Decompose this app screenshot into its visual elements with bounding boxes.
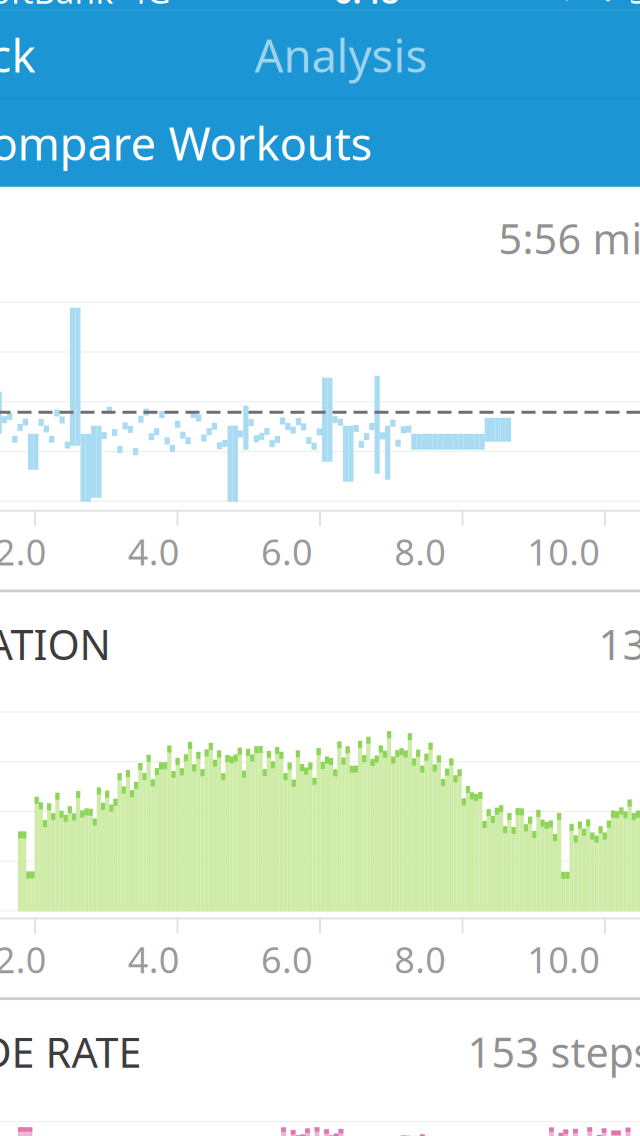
staticText: 2.0 xyxy=(0,935,47,983)
staticText: 4.0 xyxy=(128,528,180,575)
staticText: 6:48 xyxy=(333,0,399,13)
staticText: 6.0 xyxy=(261,528,313,575)
staticText: 153 steps/min xyxy=(467,1024,640,1079)
button[interactable]: ❮ xyxy=(0,15,35,95)
staticText: SoftBank xyxy=(0,0,113,13)
staticText: 58% xyxy=(628,0,640,13)
staticText: 2.0 xyxy=(0,528,47,575)
staticText: 4.0 xyxy=(128,935,180,983)
staticText: STRIDE RATE xyxy=(0,1024,141,1079)
staticText: 10.0 xyxy=(527,935,600,983)
staticText: 8.0 xyxy=(394,528,446,575)
staticText: 8.0 xyxy=(394,935,446,983)
staticText: Compare Workouts xyxy=(0,113,372,173)
staticText: ✻ xyxy=(595,0,620,7)
staticText: ➤ xyxy=(562,0,587,7)
button[interactable]: Compare Workouts xyxy=(0,99,640,187)
staticText: 5:56 min/km xyxy=(498,211,640,266)
staticText: ELEVATION xyxy=(0,617,110,671)
staticText: Analysis xyxy=(254,25,427,85)
staticText: 10.0 xyxy=(527,528,600,575)
staticText: 6.0 xyxy=(261,935,313,983)
staticText: Back xyxy=(0,25,35,85)
staticText: 4G xyxy=(127,0,170,13)
staticText: 1365 m xyxy=(598,617,640,671)
